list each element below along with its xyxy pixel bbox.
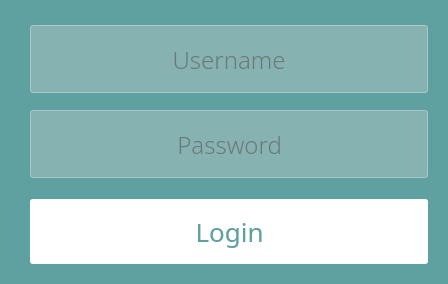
button[interactable]: Username bbox=[30, 25, 428, 93]
staticText: Username bbox=[172, 43, 286, 76]
button[interactable]: Login bbox=[30, 199, 428, 264]
button[interactable]: Password bbox=[30, 110, 428, 178]
staticText: Login bbox=[195, 214, 264, 249]
staticText: Password bbox=[177, 128, 282, 161]
